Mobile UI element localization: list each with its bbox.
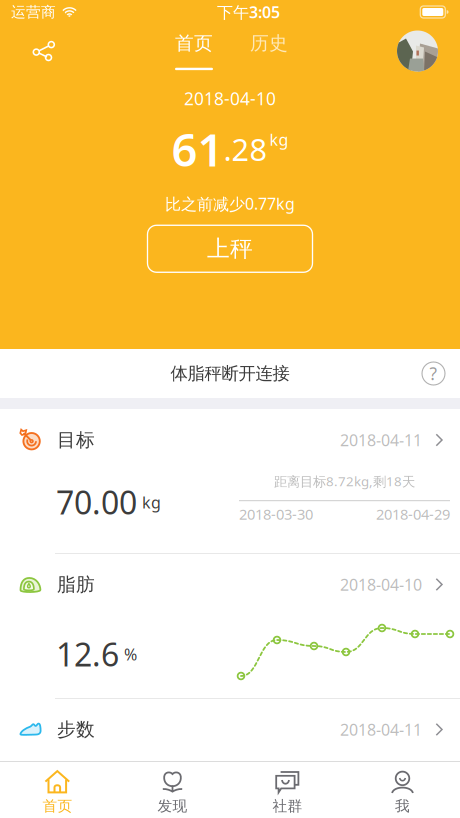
staticText: 距离目标8.72kg,剩18天: [274, 472, 415, 490]
staticText: 上秤: [207, 235, 253, 263]
staticText: 首页: [42, 797, 72, 815]
staticText: 2018-04-11: [340, 429, 422, 451]
button[interactable]: 历史: [240, 33, 298, 69]
staticText: 2018-04-10: [340, 574, 422, 595]
staticText: 发现: [157, 797, 187, 815]
staticText: 目标: [57, 428, 95, 451]
staticText: 2018-04-10: [184, 87, 276, 110]
staticText: %: [124, 644, 137, 665]
staticText: 2018-04-29: [376, 504, 450, 524]
button[interactable]: 发现: [115, 762, 230, 818]
staticText: 比之前减少0.77kg: [165, 193, 295, 214]
staticText: 下午3:05: [217, 1, 280, 23]
button[interactable]: 脂肪: [0, 554, 460, 698]
staticText: 首页: [175, 32, 213, 55]
button[interactable]: 我: [345, 762, 460, 818]
button[interactable]: 上秤: [147, 225, 312, 272]
button[interactable]: 首页: [0, 762, 115, 818]
staticText: 2018-04-11: [340, 719, 422, 740]
button[interactable]: 步数: [0, 699, 460, 761]
staticText: 社群: [272, 797, 302, 815]
staticText: 2018-03-30: [239, 504, 313, 524]
staticText: 历史: [250, 32, 288, 55]
staticText: 我: [395, 797, 410, 815]
staticText: 12.6: [56, 633, 119, 675]
button[interactable]: Share: [22, 32, 66, 70]
staticText: kg: [269, 129, 288, 150]
staticText: kg: [142, 492, 161, 513]
button[interactable]: Help: [421, 361, 446, 386]
staticText: 运营商: [11, 3, 56, 21]
staticText: ?: [429, 362, 437, 385]
staticText: 脂肪: [57, 573, 95, 596]
staticText: 体脂秤断开连接: [170, 363, 289, 384]
button[interactable]: 社群: [230, 762, 345, 818]
staticText: 70.00: [56, 481, 137, 523]
staticText: 步数: [57, 718, 95, 741]
button[interactable]: 目标: [0, 409, 460, 553]
button[interactable]: Profile: [397, 30, 438, 71]
button[interactable]: 首页: [165, 33, 223, 69]
staticText: .28: [223, 129, 267, 169]
staticText: 61: [171, 119, 223, 179]
